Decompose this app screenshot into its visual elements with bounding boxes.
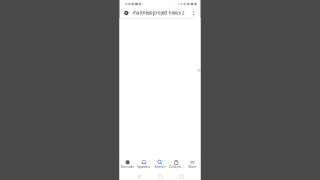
staticText: Discover (121, 165, 134, 169)
staticText: Collecti... (169, 165, 184, 169)
button[interactable]: Updates (136, 158, 152, 173)
button[interactable]: More (184, 158, 200, 173)
staticText: Updates (137, 165, 150, 169)
staticText: More (188, 165, 196, 169)
button[interactable]: Recent apps (180, 175, 183, 178)
staticText: madness project nexus 2 (133, 10, 185, 16)
button[interactable]: madness project nexus 2 (119, 8, 200, 18)
staticText: Search (154, 165, 165, 169)
button[interactable]: Home (159, 175, 162, 178)
button[interactable]: Back (137, 174, 141, 179)
button[interactable]: Discover (119, 158, 136, 173)
button[interactable]: Search (152, 158, 168, 173)
button[interactable]: Collecti... (168, 158, 184, 173)
